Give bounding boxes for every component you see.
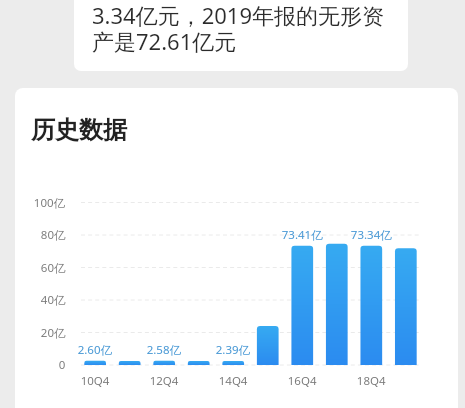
button[interactable]: 3.34亿元，2019年报的无形资产是72.61亿元 [74,0,408,71]
staticText: 历史数据 [31,115,127,145]
button[interactable]: 历史数据 [15,88,458,408]
staticText: 3.34亿元，2019年报的无形资产是72.61亿元 [92,0,396,57]
other: 历史数据柱状图 [0,0,465,408]
